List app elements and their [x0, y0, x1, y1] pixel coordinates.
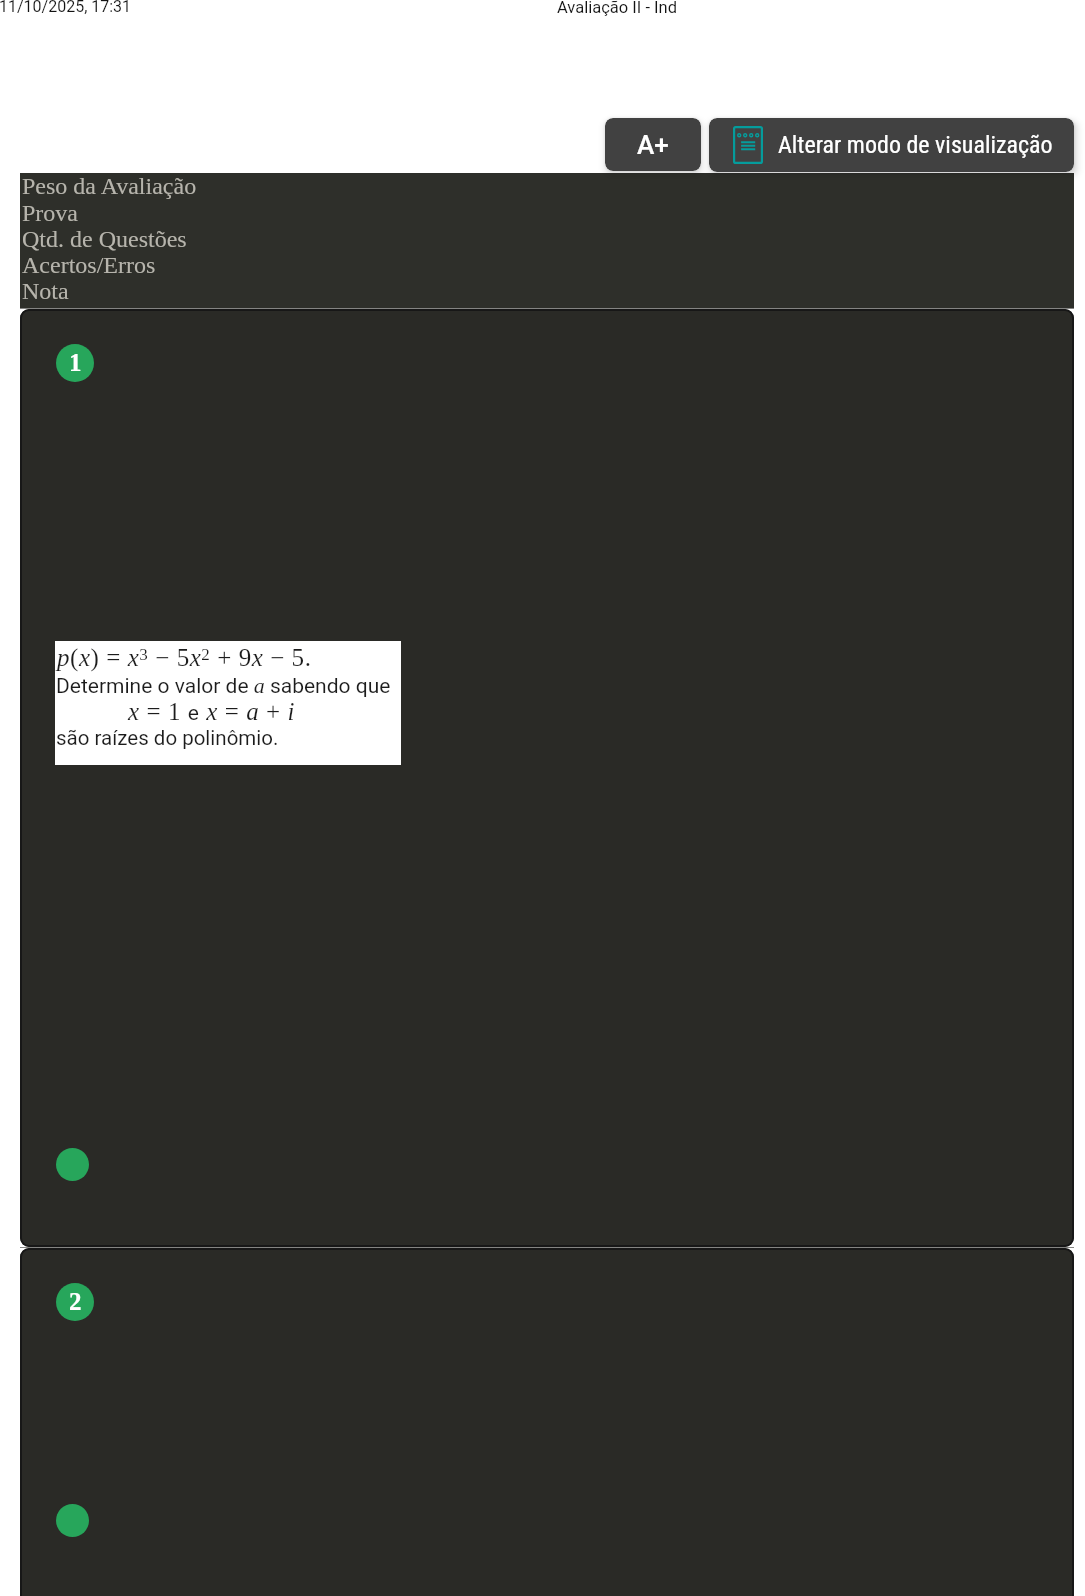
staticText: Avaliação II - Ind	[557, 0, 677, 17]
staticText: A+	[637, 130, 669, 160]
button[interactable]: Questão respondida	[56, 1148, 89, 1181]
other: Alterar modo de visualização	[733, 126, 763, 164]
button[interactable]: Questão respondida	[56, 1504, 89, 1537]
staticText: 1	[69, 349, 82, 377]
button[interactable]: 1	[56, 344, 94, 382]
staticText: x = 1 e x = a + i	[128, 698, 295, 726]
staticText: são raízes do polinômio.	[56, 726, 279, 750]
button[interactable]: 2	[56, 1283, 94, 1321]
staticText: Peso da Avaliação Prova Qtd. de Questões…	[22, 173, 197, 304]
button[interactable]: 1	[20, 309, 1074, 1247]
staticText: Alterar modo de visualização	[778, 131, 1053, 159]
staticText: 11/10/2025, 17:31	[0, 0, 132, 16]
button[interactable]: Alterar modo de visualização	[709, 118, 1074, 172]
staticText: Determine o valor de a sabendo que	[56, 673, 391, 698]
staticText: p(x) = x3 − 5x2 + 9x − 5.	[57, 644, 312, 672]
button[interactable]: 2	[20, 1248, 1074, 1596]
staticText: 2	[69, 1288, 82, 1316]
button[interactable]: A+	[605, 118, 701, 171]
